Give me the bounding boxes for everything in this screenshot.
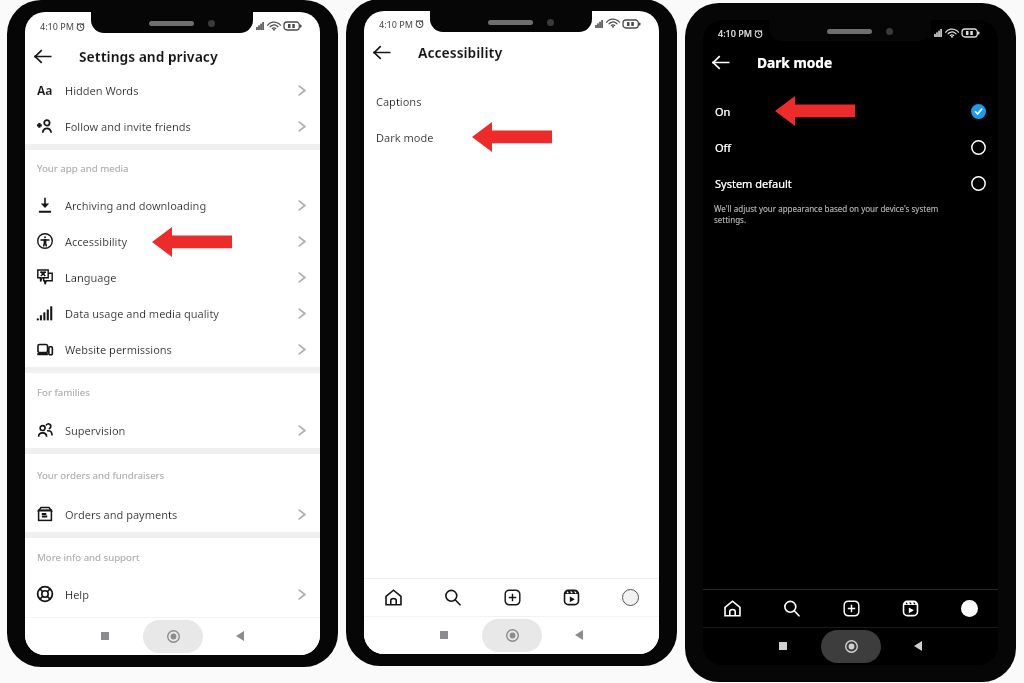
button[interactable]: Back bbox=[567, 623, 591, 647]
button[interactable]: System default bbox=[703, 165, 998, 201]
button[interactable]: Profile bbox=[617, 584, 643, 610]
button[interactable]: Off bbox=[703, 129, 998, 165]
button[interactable]: Back bbox=[228, 624, 252, 648]
staticText: 4:10 PM bbox=[40, 20, 74, 32]
button[interactable]: New post bbox=[838, 595, 864, 621]
staticText: Follow and invite friends bbox=[65, 119, 191, 134]
staticText: System default bbox=[715, 176, 792, 191]
button[interactable]: Help bbox=[25, 576, 320, 612]
button[interactable]: Reels bbox=[897, 595, 923, 621]
staticText: Accessibility bbox=[418, 43, 503, 62]
button[interactable]: Data usage and media quality bbox=[25, 295, 320, 331]
staticText: Orders and payments bbox=[65, 507, 178, 522]
staticText: Your orders and fundraisers bbox=[37, 469, 165, 482]
button[interactable]: Accessibility bbox=[25, 223, 320, 259]
button[interactable]: Search bbox=[778, 595, 804, 621]
staticText: 4:10 PM bbox=[718, 27, 752, 39]
staticText: Aa bbox=[37, 82, 53, 98]
staticText: Website permissions bbox=[65, 342, 172, 357]
button[interactable]: Search bbox=[439, 584, 465, 610]
staticText: Data usage and media quality bbox=[65, 306, 219, 321]
button[interactable]: Back bbox=[906, 634, 930, 658]
staticText: Accessibility bbox=[65, 234, 128, 249]
button[interactable]: Recents bbox=[771, 634, 795, 658]
staticText: Supervision bbox=[65, 423, 126, 438]
button[interactable]: Reels bbox=[558, 584, 584, 610]
button[interactable]: Follow and invite friends bbox=[25, 108, 320, 144]
button[interactable]: Back bbox=[703, 46, 737, 78]
button[interactable]: Home bbox=[482, 619, 542, 652]
button[interactable]: On bbox=[703, 93, 998, 129]
staticText: Archiving and downloading bbox=[65, 198, 207, 213]
button[interactable]: Home bbox=[821, 630, 881, 663]
staticText: Hidden Words bbox=[65, 83, 139, 98]
staticText: More info and support bbox=[37, 551, 140, 564]
button[interactable]: Language bbox=[25, 259, 320, 295]
button[interactable]: Aa bbox=[25, 72, 320, 108]
staticText: Dark mode bbox=[757, 53, 833, 72]
button[interactable]: Home bbox=[380, 584, 406, 610]
staticText: Settings and privacy bbox=[79, 47, 218, 66]
staticText: For families bbox=[37, 386, 90, 399]
button[interactable]: Home bbox=[719, 595, 745, 621]
staticText: Help bbox=[65, 587, 89, 602]
button[interactable]: Recents bbox=[432, 623, 456, 647]
button[interactable]: Orders and payments bbox=[25, 496, 320, 532]
button[interactable]: Profile bbox=[956, 595, 982, 621]
button[interactable]: Dark mode bbox=[364, 119, 659, 155]
staticText: On bbox=[715, 104, 731, 119]
staticText: Dark mode bbox=[376, 130, 434, 145]
staticText: Off bbox=[715, 140, 732, 155]
button[interactable]: New post bbox=[499, 584, 525, 610]
button[interactable]: Archiving and downloading bbox=[25, 187, 320, 223]
staticText: Your app and media bbox=[37, 162, 129, 175]
button[interactable]: Back bbox=[364, 36, 398, 68]
staticText: Captions bbox=[376, 94, 422, 109]
staticText: We'll adjust your appearance based on yo… bbox=[714, 203, 954, 225]
button[interactable]: Supervision bbox=[25, 412, 320, 448]
button[interactable]: Website permissions bbox=[25, 331, 320, 367]
staticText: Language bbox=[65, 270, 117, 285]
button[interactable]: Back bbox=[25, 40, 59, 72]
button[interactable]: Recents bbox=[93, 624, 117, 648]
staticText: 4:10 PM bbox=[379, 18, 413, 30]
button[interactable]: Home bbox=[143, 620, 203, 653]
button[interactable]: Captions bbox=[364, 83, 659, 119]
